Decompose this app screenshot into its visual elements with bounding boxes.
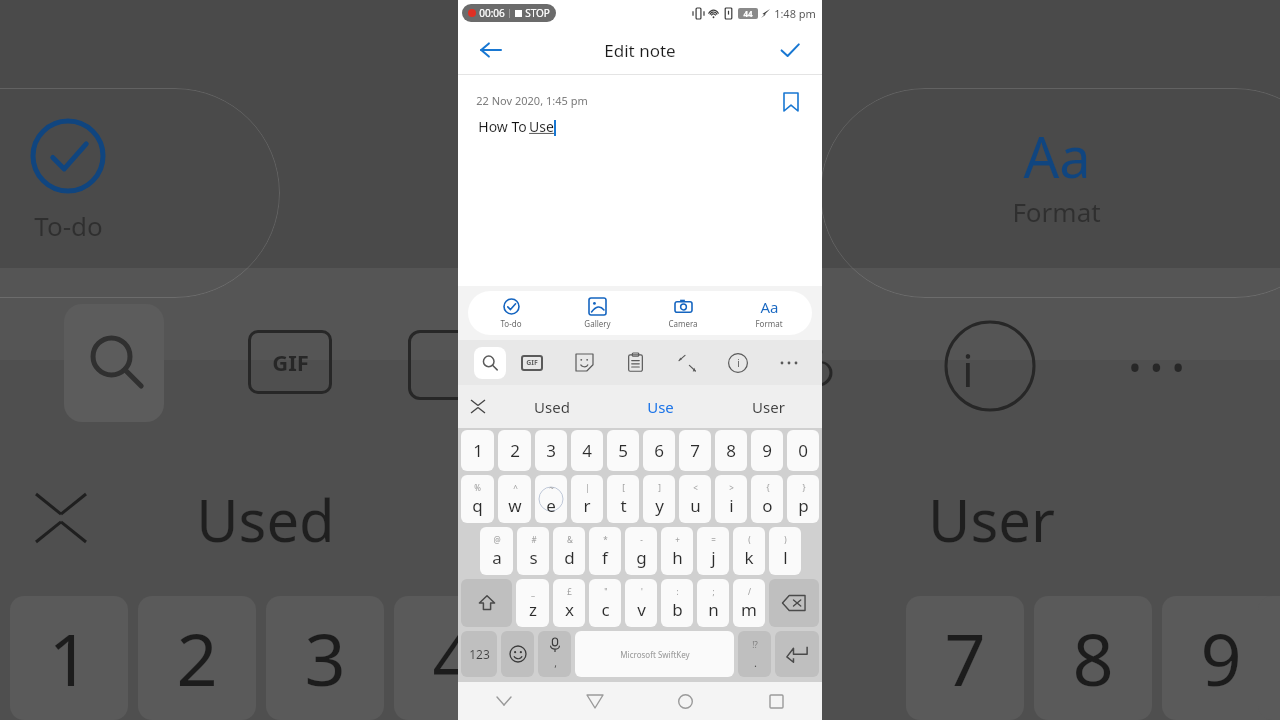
staticText: - <box>640 534 643 545</box>
staticText: < <box>693 482 698 493</box>
button[interactable]: / <box>733 579 765 627</box>
button[interactable]: ^ <box>498 475 531 523</box>
button[interactable]: Punctuation <box>738 631 771 677</box>
button[interactable]: 9 <box>751 430 783 471</box>
button[interactable]: 6 <box>643 430 675 471</box>
button[interactable]: More options <box>763 340 814 385</box>
staticText: 3 <box>546 439 556 462</box>
staticText: Used <box>196 480 335 559</box>
button[interactable]: ) <box>769 527 801 575</box>
button[interactable]: " <box>589 579 621 627</box>
button[interactable]: 1 <box>461 430 494 471</box>
button[interactable]: ] <box>643 475 675 523</box>
staticText: % <box>474 482 481 493</box>
staticText: £ <box>567 586 572 597</box>
button[interactable]: To-do <box>468 291 554 335</box>
staticText: d <box>564 546 575 569</box>
button[interactable]: Gallery <box>554 291 640 335</box>
staticText: 7 <box>944 609 986 707</box>
button[interactable]: 4 <box>571 430 603 471</box>
staticText: Microsoft SwiftKey <box>620 649 690 660</box>
button[interactable]: } <box>787 475 819 523</box>
button[interactable]: | <box>571 475 603 523</box>
button[interactable]: ( <box>733 527 765 575</box>
staticText: i <box>962 340 974 400</box>
button[interactable]: Bookmark <box>776 87 806 117</box>
staticText: x <box>565 598 574 621</box>
button[interactable]: Hide keyboard <box>458 682 549 720</box>
button[interactable]: 7 <box>679 430 711 471</box>
staticText: e <box>546 494 556 517</box>
button[interactable]: Translate <box>661 340 712 385</box>
button[interactable]: Backspace <box>769 579 819 627</box>
button[interactable]: 0 <box>787 430 819 471</box>
staticText: Aa <box>1023 118 1091 194</box>
staticText: z <box>529 598 537 621</box>
button[interactable]: < <box>679 475 711 523</box>
button[interactable]: Camera <box>640 291 726 335</box>
staticText: 2 <box>176 609 218 707</box>
button[interactable]: Recent apps <box>731 682 822 720</box>
button[interactable]: ~ <box>535 475 567 523</box>
button[interactable]: # <box>517 527 549 575</box>
staticText: " <box>604 586 608 597</box>
button[interactable]: 5 <box>607 430 639 471</box>
button[interactable]: = <box>697 527 729 575</box>
button[interactable]: Search <box>474 347 506 379</box>
button[interactable]: - <box>625 527 657 575</box>
button[interactable]: ; <box>697 579 729 627</box>
button[interactable]: Save note <box>772 32 808 68</box>
button[interactable]: 2 <box>498 430 531 471</box>
staticText: y <box>655 494 664 517</box>
button[interactable]: Clipboard <box>610 340 661 385</box>
button[interactable]: _ <box>516 579 549 627</box>
button[interactable]: Voice input <box>538 631 571 677</box>
staticText: o <box>762 494 773 517</box>
button[interactable]: Numbers <box>461 631 497 677</box>
staticText: q <box>472 494 483 517</box>
button[interactable]: Emoji <box>501 631 534 677</box>
button[interactable]: [ <box>607 475 639 523</box>
staticText: Format <box>755 318 783 329</box>
staticText: 1:48 pm <box>774 6 816 21</box>
button[interactable]: Back <box>549 682 640 720</box>
button[interactable]: > <box>715 475 747 523</box>
button[interactable]: £ <box>553 579 585 627</box>
button[interactable]: @ <box>480 527 513 575</box>
button[interactable]: Stickers <box>558 340 610 385</box>
staticText: 6 <box>654 439 664 462</box>
button[interactable]: Info <box>712 340 763 385</box>
staticText: 7 <box>690 439 700 462</box>
button[interactable]: 3 <box>535 430 567 471</box>
button[interactable]: Enter <box>775 631 819 677</box>
button[interactable]: Expand <box>458 385 498 428</box>
button[interactable]: Used <box>498 385 606 428</box>
staticText: i <box>729 494 734 517</box>
button[interactable]: Microsoft SwiftKey <box>575 631 734 677</box>
staticText: } <box>802 482 806 493</box>
button[interactable]: ' <box>625 579 657 627</box>
button[interactable]: : <box>661 579 693 627</box>
button[interactable]: * <box>589 527 621 575</box>
button[interactable]: GIF <box>506 340 558 385</box>
staticText: • • • <box>1128 344 1185 390</box>
button[interactable]: + <box>661 527 693 575</box>
staticText: 5 <box>618 439 628 462</box>
staticText: / <box>748 586 751 597</box>
button[interactable]: Aa <box>726 291 812 335</box>
button[interactable]: Back <box>472 32 508 68</box>
staticText: l <box>783 546 788 569</box>
button[interactable]: Home <box>640 682 731 720</box>
staticText: Aa <box>760 297 779 317</box>
staticText: User <box>752 397 785 417</box>
button[interactable]: % <box>461 475 494 523</box>
button[interactable]: { <box>751 475 783 523</box>
button[interactable]: Shift <box>461 579 512 627</box>
staticText: t <box>620 494 627 517</box>
button[interactable]: & <box>553 527 585 575</box>
button[interactable]: Use <box>606 385 714 428</box>
staticText: ^ <box>513 482 518 493</box>
button[interactable]: 8 <box>715 430 747 471</box>
button[interactable]: User <box>714 385 822 428</box>
